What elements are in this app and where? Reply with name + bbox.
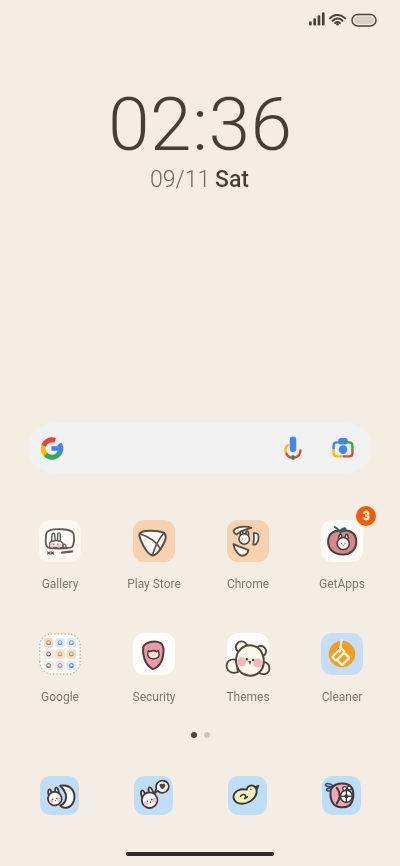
staticText: Sat: [215, 166, 250, 193]
staticText: 09/11: [150, 166, 211, 193]
staticText: Security: [121, 690, 187, 704]
button[interactable]: Cleaner: [309, 626, 375, 704]
button[interactable]: 3: [309, 513, 375, 591]
button[interactable]: Google: [27, 626, 93, 704]
button[interactable]: Security: [121, 626, 187, 704]
button[interactable]: Notes: [228, 776, 267, 815]
button[interactable]: Messages: [134, 776, 173, 815]
staticText: 02:36: [108, 80, 293, 168]
staticText: GetApps: [309, 577, 375, 591]
staticText: Themes: [215, 690, 281, 704]
staticText: Gallery: [27, 577, 93, 591]
staticText: Chrome: [215, 577, 281, 591]
staticText: Cleaner: [309, 690, 375, 704]
button[interactable]: Phone: [40, 776, 79, 815]
staticText: Google: [27, 690, 93, 704]
button[interactable]: Camera: [322, 776, 361, 815]
button[interactable]: Gallery: [27, 513, 93, 591]
staticText: 3: [363, 509, 370, 523]
button[interactable]: Play Store: [121, 513, 187, 591]
button[interactable]: Search: [28, 423, 372, 473]
button[interactable]: Chrome: [215, 513, 281, 591]
staticText: Play Store: [121, 577, 187, 591]
button[interactable]: Themes: [215, 626, 281, 704]
